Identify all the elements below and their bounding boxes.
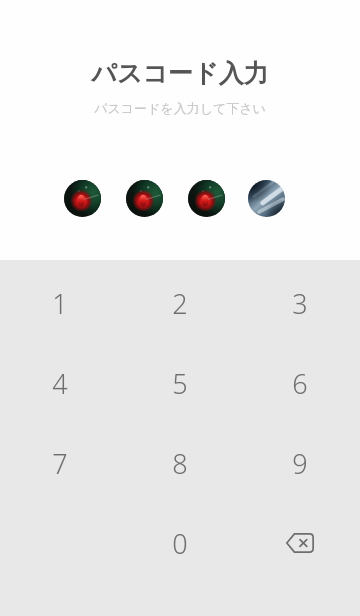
staticText: 3 — [292, 285, 308, 322]
button[interactable]: 5 — [120, 343, 240, 423]
staticText: 2 — [172, 285, 188, 322]
button[interactable]: 0 — [120, 503, 240, 583]
button[interactable]: 1 — [0, 263, 120, 343]
button[interactable]: Backspace — [240, 503, 360, 583]
staticText: 5 — [172, 365, 188, 402]
staticText: 0 — [172, 525, 188, 562]
staticText: 8 — [172, 445, 188, 482]
button[interactable]: 8 — [120, 423, 240, 503]
staticText: パスコード入力 — [0, 58, 360, 89]
button[interactable]: 4 — [0, 343, 120, 423]
button[interactable]: 6 — [240, 343, 360, 423]
staticText: 4 — [52, 365, 68, 402]
staticText: 6 — [292, 365, 308, 402]
button[interactable]: 7 — [0, 423, 120, 503]
staticText: 7 — [52, 445, 68, 482]
button[interactable]: 2 — [120, 263, 240, 343]
staticText: 1 — [52, 285, 68, 322]
staticText: パスコードを入力して下さい — [0, 100, 360, 116]
button[interactable]: 9 — [240, 423, 360, 503]
button[interactable]: 3 — [240, 263, 360, 343]
staticText: 9 — [292, 445, 308, 482]
